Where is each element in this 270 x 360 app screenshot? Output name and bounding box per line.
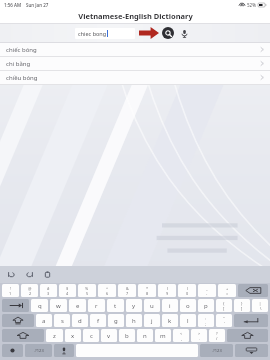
staticText: <: [180, 331, 183, 336]
staticText: *: [146, 286, 149, 291]
button[interactable]: ?: [209, 329, 225, 342]
button[interactable]: Search: [162, 27, 174, 39]
staticText: f: [97, 317, 100, 325]
button[interactable]: $: [59, 284, 76, 297]
button[interactable]: f: [90, 314, 106, 327]
button[interactable]: m: [155, 329, 171, 342]
staticText: _: [206, 286, 208, 291]
button[interactable]: chiếc bóng: [0, 43, 270, 56]
button[interactable]: _: [198, 284, 216, 297]
button[interactable]: Tab: [2, 299, 29, 312]
button[interactable]: Dictation: [54, 344, 74, 357]
button[interactable]: e: [69, 299, 86, 312]
staticText: chiều bóng: [6, 74, 38, 82]
staticText: l: [187, 317, 189, 325]
button[interactable]: :: [198, 314, 214, 327]
staticText: chiec bong: [78, 30, 107, 37]
button[interactable]: s: [54, 314, 70, 327]
button[interactable]: ^: [98, 284, 116, 297]
button[interactable]: *: [138, 284, 156, 297]
button[interactable]: Shift: [2, 329, 44, 342]
staticText: }: [241, 301, 243, 306]
staticText: w: [56, 302, 61, 310]
button[interactable]: chi bằng: [0, 57, 270, 70]
button[interactable]: !: [2, 284, 19, 297]
button[interactable]: o: [180, 299, 196, 312]
button[interactable]: k: [162, 314, 178, 327]
button[interactable]: h: [126, 314, 142, 327]
staticText: k: [168, 317, 172, 325]
button[interactable]: t: [107, 299, 124, 312]
button[interactable]: b: [119, 329, 135, 342]
button[interactable]: j: [144, 314, 160, 327]
button[interactable]: Globe: [2, 344, 23, 357]
staticText: ": [223, 316, 225, 321]
button[interactable]: Shift: [227, 329, 268, 342]
button[interactable]: i: [162, 299, 178, 312]
staticText: p: [204, 302, 208, 310]
button[interactable]: <: [173, 329, 189, 342]
button[interactable]: Paste: [42, 269, 53, 280]
button[interactable]: chiec bong: [75, 28, 135, 39]
staticText: /: [216, 336, 218, 341]
button[interactable]: z: [46, 329, 63, 342]
button[interactable]: u: [144, 299, 160, 312]
button[interactable]: l: [180, 314, 196, 327]
staticText: n: [143, 332, 147, 340]
button[interactable]: Redo: [24, 269, 35, 280]
button[interactable]: x: [65, 329, 81, 342]
button[interactable]: a: [36, 314, 52, 327]
button[interactable]: y: [126, 299, 142, 312]
button[interactable]: Return: [234, 314, 268, 327]
button[interactable]: }: [234, 299, 250, 312]
button[interactable]: #: [40, 284, 57, 297]
staticText: 8: [146, 291, 149, 296]
staticText: ?: [216, 331, 218, 336]
staticText: :: [205, 316, 207, 321]
staticText: (: [167, 286, 169, 291]
button[interactable]: >: [191, 329, 207, 342]
staticText: e: [76, 302, 80, 310]
button[interactable]: |: [252, 299, 268, 312]
button[interactable]: r: [88, 299, 105, 312]
button[interactable]: Voice input: [179, 28, 190, 39]
button[interactable]: ): [178, 284, 196, 297]
staticText: @: [28, 286, 32, 291]
button[interactable]: Delete: [238, 284, 268, 297]
staticText: 0: [186, 291, 189, 296]
button[interactable]: Caps lock: [2, 314, 34, 327]
button[interactable]: w: [50, 299, 67, 312]
button[interactable]: (: [158, 284, 176, 297]
staticText: !: [10, 286, 12, 291]
staticText: ^: [106, 286, 109, 291]
button[interactable]: p: [198, 299, 214, 312]
button[interactable]: n: [137, 329, 153, 342]
button[interactable]: {: [216, 299, 232, 312]
staticText: o: [186, 302, 190, 310]
button[interactable]: q: [31, 299, 48, 312]
button[interactable]: &: [118, 284, 136, 297]
staticText: r: [95, 302, 98, 310]
button[interactable]: .?123: [25, 344, 52, 357]
button[interactable]: %: [78, 284, 96, 297]
staticText: h: [132, 317, 136, 325]
button[interactable]: d: [72, 314, 88, 327]
staticText: d: [78, 317, 82, 325]
button[interactable]: c: [83, 329, 99, 342]
button[interactable]: v: [101, 329, 117, 342]
staticText: .?123: [34, 348, 44, 353]
staticText: ]: [241, 306, 243, 311]
button[interactable]: .?123: [200, 344, 233, 357]
button[interactable]: ": [216, 314, 232, 327]
button[interactable]: Hide keyboard: [235, 344, 268, 357]
staticText: >: [198, 331, 201, 336]
button[interactable]: chiều bóng: [0, 71, 270, 84]
button[interactable]: +: [218, 284, 236, 297]
staticText: &: [126, 286, 129, 291]
staticText: =: [226, 291, 229, 296]
button[interactable]: Undo: [6, 269, 17, 280]
staticText: y: [132, 302, 136, 310]
button[interactable]: g: [108, 314, 124, 327]
button[interactable]: @: [21, 284, 38, 297]
